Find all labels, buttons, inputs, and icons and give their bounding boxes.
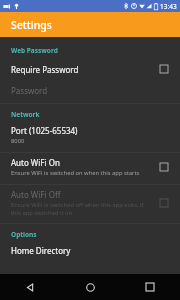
staticText: Network	[11, 110, 40, 119]
staticText: Auto WiFi On	[11, 157, 60, 168]
staticText: Ensure WiFi is switched on when this app…	[11, 169, 140, 177]
staticText: Home Directory	[11, 245, 71, 256]
button[interactable]: Home Directory	[0, 241, 180, 260]
button[interactable]: Auto WiFi Off	[0, 185, 180, 220]
button[interactable]: Home	[60, 274, 120, 300]
button[interactable]: Back	[0, 274, 60, 300]
staticText: 8000	[11, 137, 25, 145]
staticText: 13:43	[160, 2, 177, 11]
button[interactable]: Auto WiFi On	[0, 153, 180, 181]
button[interactable]: Recent apps	[120, 274, 180, 300]
staticText: Port (1025-65534)	[11, 125, 78, 136]
staticText: Options	[11, 230, 37, 239]
button[interactable]: Auto WiFi On	[156, 159, 172, 175]
staticText: Require Password	[11, 64, 79, 75]
button[interactable]: Require Password	[156, 61, 172, 77]
button[interactable]: Password	[0, 81, 180, 100]
button[interactable]: Settings	[0, 12, 180, 37]
staticText: Ensure WiFi is switched off when this ap…	[11, 201, 150, 216]
button[interactable]: Port (1025-65534)	[0, 121, 180, 149]
staticText: Auto WiFi Off	[11, 189, 61, 200]
button[interactable]: Auto WiFi Off	[156, 195, 172, 211]
staticText: Password	[11, 85, 48, 96]
button[interactable]: Require Password	[0, 57, 180, 81]
staticText: Web Password	[11, 46, 58, 55]
staticText: Settings	[11, 18, 52, 32]
